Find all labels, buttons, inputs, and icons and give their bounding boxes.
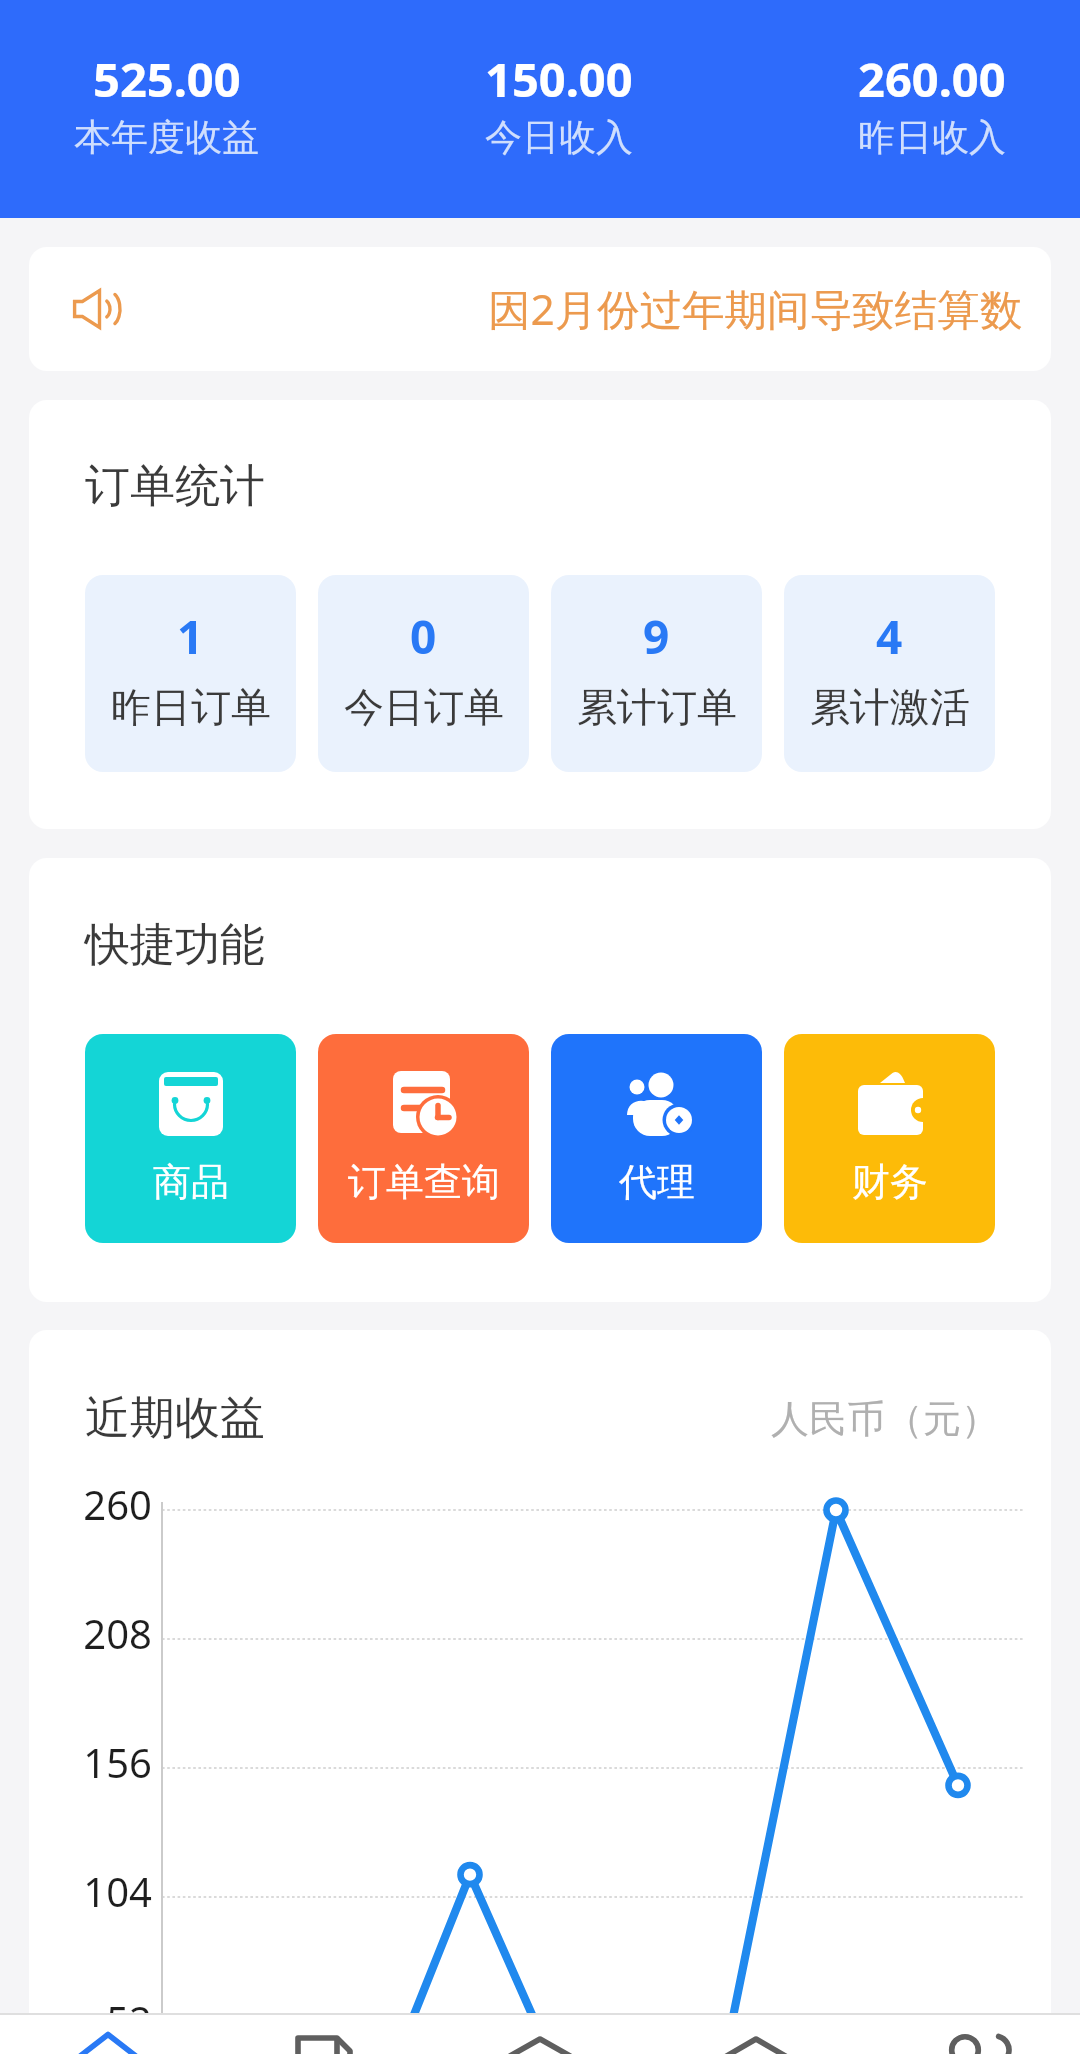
staticText: 150.00 [485,47,633,111]
staticText: 4 [876,605,903,668]
button[interactable]: 1 [85,575,296,772]
button[interactable]: 9 [551,575,762,772]
staticText: 今日订单 [344,682,504,732]
staticText: 9 [643,605,670,668]
staticText: 昨日订单 [111,682,271,732]
button[interactable]: 150.00 [485,0,633,218]
button[interactable]: 代理 [551,1034,762,1243]
staticText: 商品 [153,1158,229,1206]
button[interactable]: Agents [648,2015,864,2054]
button[interactable]: Orders [216,2015,432,2054]
staticText: 订单统计 [85,458,265,515]
staticText: 近期收益 [85,1390,265,1447]
staticText: 260 [40,1477,152,1531]
staticText: 财务 [852,1158,928,1206]
button[interactable]: Home [0,2015,216,2054]
button[interactable]: 4 [784,575,995,772]
button[interactable]: 商品 [85,1034,296,1243]
button[interactable]: 525.00 [74,0,259,218]
staticText: 208 [40,1606,152,1660]
button[interactable]: 订单查询 [318,1034,529,1243]
staticText: 累计激活 [810,682,970,732]
staticText: 昨日收入 [858,114,1006,161]
staticText: 52 [40,1993,152,2047]
staticText: 代理 [619,1158,695,1206]
staticText: 本年度收益 [74,114,259,161]
button[interactable]: 0 [318,575,529,772]
staticText: 104 [40,1864,152,1918]
staticText: 因2月份过年期间导致结算数 [488,280,1023,338]
staticText: 525.00 [93,47,241,111]
staticText: 累计订单 [577,682,737,732]
staticText: 人民币（元） [771,1395,999,1443]
staticText: 260.00 [858,47,1006,111]
other: Announcement [74,285,122,333]
button[interactable]: Announcement [29,247,1051,371]
button[interactable]: Me [864,2015,1080,2054]
staticText: 快捷功能 [85,917,265,974]
button[interactable]: 财务 [784,1034,995,1243]
button[interactable]: Products [432,2015,648,2054]
button[interactable]: 260.00 [858,0,1006,218]
staticText: 今日收入 [485,114,633,161]
staticText: 订单查询 [348,1158,500,1206]
staticText: 156 [40,1735,152,1789]
staticText: 0 [410,605,437,668]
staticText: 1 [177,605,204,668]
